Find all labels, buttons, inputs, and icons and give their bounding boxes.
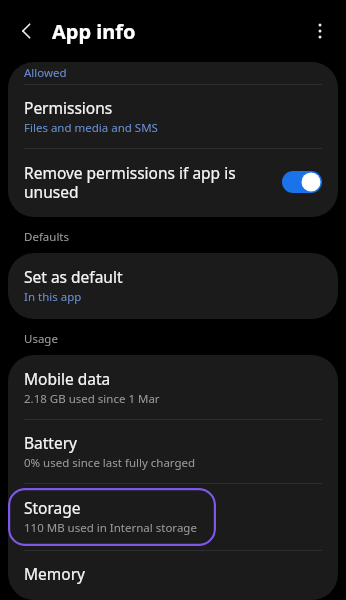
- other: Back: [13, 18, 39, 44]
- staticText: Usage: [24, 331, 58, 347]
- button[interactable]: Battery: [8, 420, 338, 483]
- other: Remove permissions toggle, on: [282, 171, 322, 193]
- button[interactable]: Memory: [8, 551, 338, 600]
- staticText: Mobile data: [24, 368, 111, 389]
- button[interactable]: Remove permissions if app is unused: [8, 149, 338, 217]
- staticText: 2.18 GB used since 1 Mar: [24, 391, 160, 407]
- staticText: App info: [52, 18, 136, 45]
- staticText: Storage: [24, 497, 81, 518]
- staticText: In this app: [24, 289, 82, 305]
- staticText: Files and media and SMS: [24, 120, 158, 136]
- button[interactable]: Set as default: [8, 253, 338, 319]
- button[interactable]: Back: [10, 15, 42, 47]
- staticText: Permissions: [24, 97, 113, 118]
- staticText: 110 MB used in Internal storage: [24, 520, 197, 536]
- staticText: 0% used since last fully charged: [24, 455, 196, 471]
- staticText: Allowed: [24, 65, 67, 81]
- staticText: Battery: [24, 432, 78, 453]
- button[interactable]: Mobile data: [8, 355, 338, 419]
- button[interactable]: More options: [304, 15, 336, 47]
- staticText: Remove permissions if app is unused: [24, 162, 272, 202]
- button[interactable]: Storage: [8, 488, 216, 546]
- other: More options: [307, 18, 333, 44]
- staticText: Defaults: [24, 229, 70, 245]
- button[interactable]: Permissions: [8, 85, 338, 148]
- button[interactable]: Allowed: [8, 62, 338, 84]
- staticText: Set as default: [24, 266, 123, 287]
- staticText: Memory: [24, 563, 85, 584]
